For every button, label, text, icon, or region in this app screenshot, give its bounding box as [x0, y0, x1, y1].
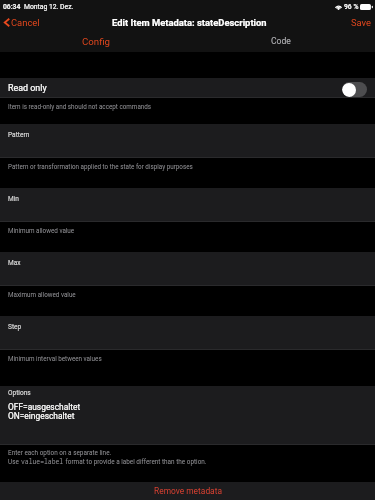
button[interactable]: Cancel	[0, 17, 46, 28]
button[interactable]: Save	[348, 15, 375, 30]
button[interactable]: Options	[0, 386, 375, 445]
staticText: Montag 12. Dez.	[24, 3, 74, 11]
staticText: Save	[351, 17, 372, 28]
staticText: Pattern or transformation applied to the…	[8, 163, 193, 170]
staticText: 06:34	[3, 3, 21, 11]
staticText: OFF=ausgeschaltet	[8, 402, 81, 412]
staticText: value=label	[21, 457, 64, 466]
staticText: ON=eingeschaltet	[8, 411, 75, 421]
button[interactable]: Remove metadata	[0, 482, 375, 500]
staticText: Minimum allowed value	[8, 227, 75, 234]
staticText: Options	[8, 389, 31, 397]
staticText: 96 %	[344, 3, 359, 11]
button[interactable]: Step	[0, 316, 375, 350]
staticText: Edit Item Metadata: stateDescription	[112, 17, 267, 28]
other: Read only toggle	[342, 82, 367, 97]
staticText: Cancel	[11, 17, 40, 28]
button[interactable]: Read only	[0, 78, 375, 98]
staticText: Min	[8, 195, 19, 203]
button[interactable]: Pattern	[0, 124, 375, 158]
staticText: Minimum interval between values	[8, 355, 102, 362]
staticText: Code	[271, 36, 291, 46]
staticText: Step	[8, 323, 22, 331]
staticText: format to provide a label different than…	[64, 458, 207, 466]
button[interactable]: Max	[0, 252, 375, 286]
staticText: Item is read-only and should not accept …	[8, 103, 152, 110]
staticText: Maximum allowed value	[8, 291, 76, 298]
staticText: Pattern	[8, 131, 30, 139]
staticText: Use	[8, 458, 21, 466]
staticText: Enter each option on a separate line.	[8, 449, 112, 457]
button[interactable]: Code	[187, 30, 375, 52]
button[interactable]: Min	[0, 188, 375, 222]
staticText: Config	[82, 36, 110, 47]
staticText: Read only	[8, 83, 47, 93]
staticText: Max	[8, 259, 21, 267]
staticText: Remove metadata	[154, 486, 222, 496]
button[interactable]: Config	[0, 30, 187, 52]
